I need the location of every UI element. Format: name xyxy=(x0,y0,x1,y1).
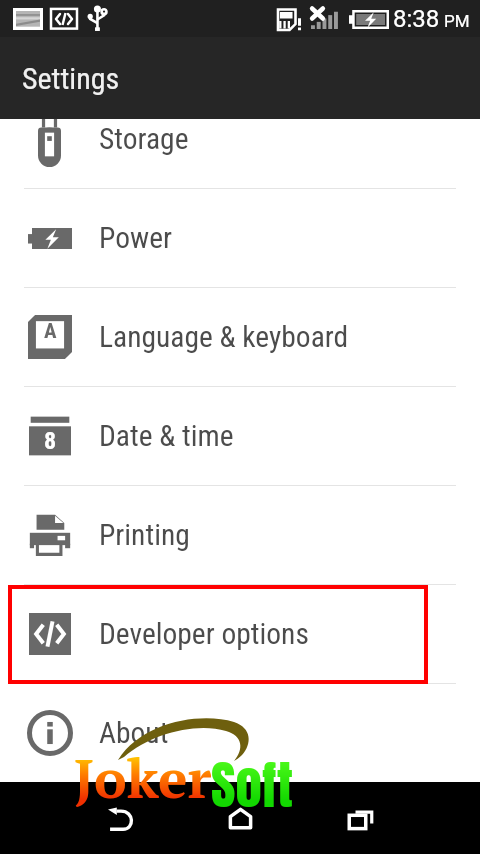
staticText: Joker xyxy=(74,741,212,814)
staticText: 8 xyxy=(44,427,57,455)
staticText: PM xyxy=(444,11,470,31)
staticText: A xyxy=(44,319,57,344)
button[interactable]: Developer options xyxy=(0,585,480,683)
button[interactable]: A xyxy=(0,288,480,386)
staticText: Power xyxy=(99,221,172,256)
staticText: Printing xyxy=(99,518,190,553)
button[interactable]: About xyxy=(0,684,480,782)
button[interactable]: Power xyxy=(0,189,480,287)
staticText: Settings xyxy=(22,61,120,96)
staticText: 8:38 xyxy=(393,5,440,33)
button[interactable]: 8 xyxy=(0,387,480,485)
button[interactable]: Storage xyxy=(0,119,480,188)
staticText: Date & time xyxy=(99,419,234,454)
button[interactable]: Printing xyxy=(0,486,480,584)
staticText: Developer options xyxy=(99,617,309,652)
staticText: About xyxy=(99,716,169,751)
button[interactable]: Recent apps xyxy=(300,782,420,854)
staticText: Soft xyxy=(211,745,293,825)
button[interactable]: Home xyxy=(180,782,300,854)
button[interactable]: Back xyxy=(61,782,181,854)
staticText: Storage xyxy=(99,122,189,157)
staticText: Language & keyboard xyxy=(99,320,349,355)
